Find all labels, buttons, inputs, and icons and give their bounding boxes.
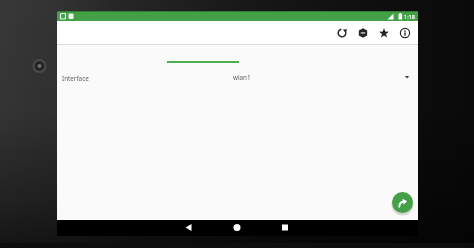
button[interactable] [178,220,298,236]
button[interactable] [392,192,413,213]
staticText: wlan1 [233,73,251,82]
staticText: 1:18 [404,13,415,20]
button[interactable] [331,22,352,43]
button[interactable] [394,22,415,43]
staticText: Interface [62,74,89,83]
button[interactable] [373,22,394,43]
button[interactable] [352,22,373,43]
button[interactable]: wlan1 [160,67,414,87]
